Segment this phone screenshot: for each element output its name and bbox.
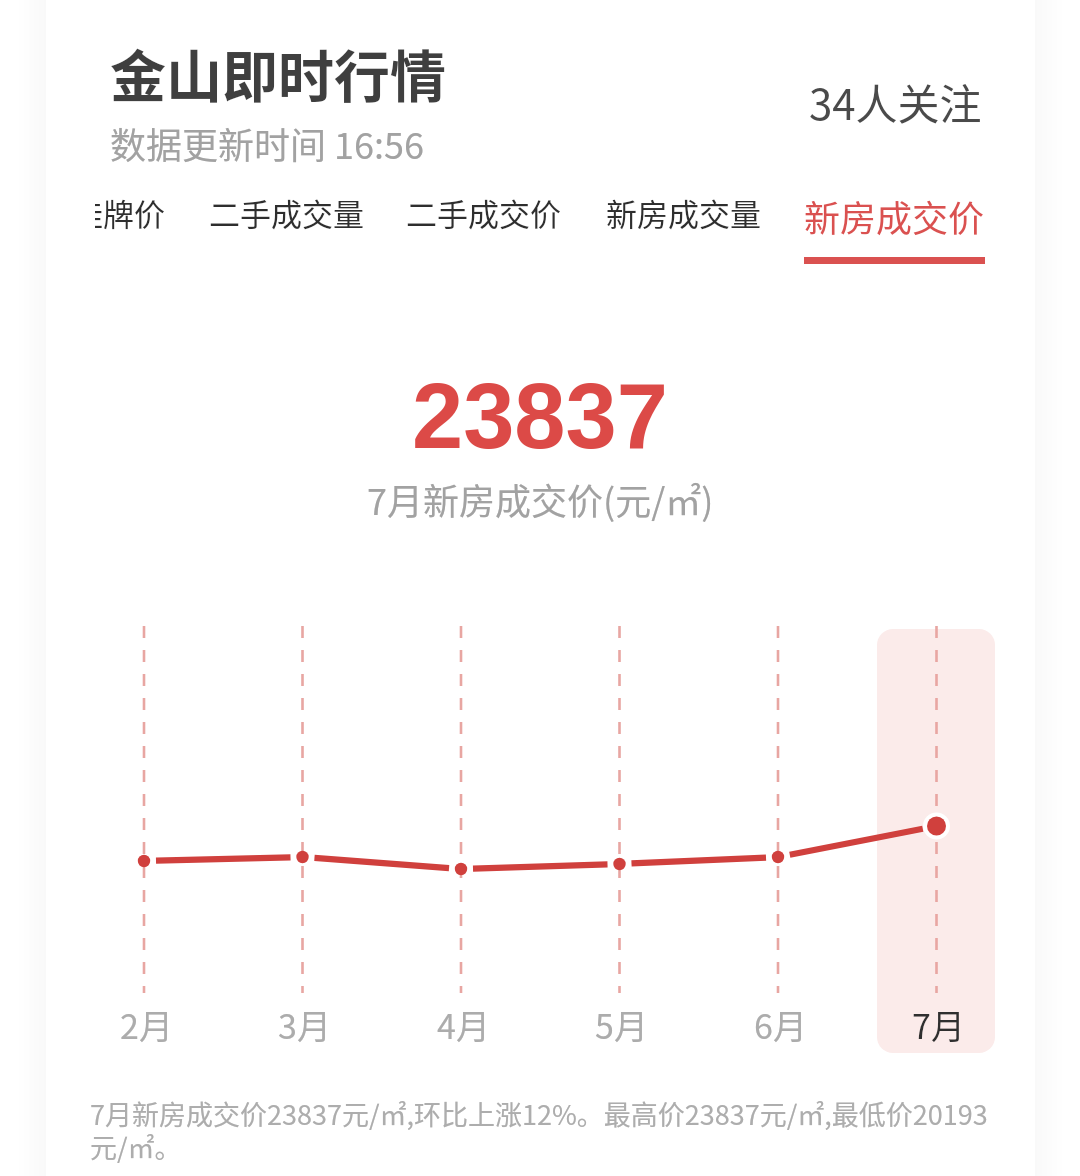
staticText: 3月	[278, 1000, 331, 1049]
button[interactable]: 5月	[561, 1000, 681, 1049]
button[interactable]: 二手成交量	[209, 190, 365, 270]
other: 新房成交价走势图	[0, 610, 1080, 1010]
button[interactable]: 3月	[244, 1000, 364, 1049]
staticText: 7月新房成交价(元/㎡)	[367, 473, 714, 525]
button[interactable]: 挂牌价	[95, 190, 168, 270]
staticText: 新房成交量	[606, 190, 761, 235]
staticText: 23837	[412, 365, 668, 468]
staticText: 二手成交量	[209, 190, 364, 235]
button[interactable]: 二手成交价	[406, 190, 562, 270]
staticText: 7月新房成交价23837元/㎡,环比上涨12%。最高价23837元/㎡,最低价2…	[90, 1094, 995, 1165]
button[interactable]: 34人关注	[809, 71, 982, 132]
staticText: 金山即时行情	[110, 32, 446, 113]
button[interactable]: 7月	[878, 1000, 998, 1049]
button[interactable]: 6月	[720, 1000, 840, 1049]
staticText: 7月	[912, 1000, 965, 1049]
staticText: 2月	[120, 1000, 173, 1049]
staticText: 6月	[754, 1000, 807, 1049]
staticText: 4月	[437, 1000, 490, 1049]
button[interactable]: 2月	[86, 1000, 206, 1049]
staticText: 挂牌价	[95, 190, 165, 235]
staticText: 5月	[595, 1000, 648, 1049]
staticText: 新房成交价	[804, 190, 985, 242]
staticText: 数据更新时间 16:56	[110, 117, 424, 169]
staticText: 34人关注	[809, 71, 982, 132]
button[interactable]: 4月	[403, 1000, 523, 1049]
button[interactable]: 新房成交量	[606, 190, 762, 270]
button[interactable]: 新房成交价	[804, 190, 985, 270]
staticText: 二手成交价	[406, 190, 561, 235]
